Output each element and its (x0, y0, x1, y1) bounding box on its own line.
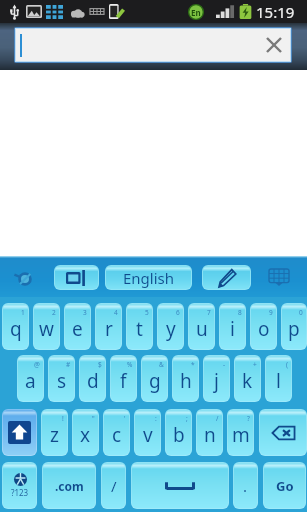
staticText: ? (247, 414, 250, 423)
button[interactable]: Symbols (3, 463, 36, 508)
button[interactable]: & (142, 356, 167, 401)
staticText: . (243, 476, 248, 496)
staticText: o (258, 316, 270, 342)
button[interactable]: 1 (3, 304, 28, 349)
button[interactable]: ' (104, 410, 129, 455)
button[interactable]: % (111, 356, 136, 401)
button[interactable]: Shift (3, 410, 36, 455)
staticText: : (155, 414, 157, 423)
staticText: 5 (145, 308, 149, 317)
staticText: $ (98, 360, 102, 369)
staticText: / (216, 414, 219, 423)
staticText: 9 (269, 308, 273, 317)
staticText: n (204, 422, 216, 448)
button[interactable]: ; (166, 410, 191, 455)
button[interactable]: .com (43, 463, 95, 508)
button[interactable]: @ (18, 356, 43, 401)
staticText: i (230, 316, 235, 342)
button[interactable]: $ (80, 356, 105, 401)
button[interactable]: Go (264, 463, 305, 508)
staticText: ( (286, 360, 288, 369)
staticText: 8 (238, 308, 242, 317)
staticText: s (57, 368, 67, 394)
button[interactable]: 8 (220, 304, 245, 349)
button[interactable]: Handwriting (203, 266, 250, 289)
staticText: 4 (114, 308, 118, 317)
staticText: u (196, 316, 208, 342)
staticText: d (87, 368, 99, 394)
staticText: q (10, 316, 22, 342)
staticText: ! (62, 414, 64, 423)
staticText: / (111, 476, 117, 496)
button[interactable]: ? (228, 410, 253, 455)
staticText: a (25, 368, 36, 394)
staticText: ' (124, 414, 126, 423)
staticText: - (223, 360, 226, 369)
staticText: + (253, 360, 257, 369)
button[interactable]: . (234, 463, 257, 508)
staticText: h (180, 368, 192, 394)
button[interactable]: " (73, 410, 98, 455)
staticText: 7 (207, 308, 211, 317)
staticText: b (173, 422, 185, 448)
button[interactable]: - (204, 356, 229, 401)
staticText: p (288, 316, 300, 342)
staticText: & (159, 360, 164, 369)
button[interactable]: 2 (34, 304, 59, 349)
staticText: ?123 (11, 487, 29, 498)
staticText: 6 (176, 308, 180, 317)
staticText: v (143, 422, 153, 448)
button[interactable]: / (102, 463, 125, 508)
staticText: .com (55, 478, 84, 494)
button[interactable]: English (106, 266, 191, 289)
button[interactable]: 9 (251, 304, 276, 349)
button[interactable]: 4 (96, 304, 121, 349)
staticText: * (191, 360, 195, 369)
staticText: ; (186, 414, 188, 423)
button[interactable]: ! (42, 410, 67, 455)
staticText: English (123, 268, 175, 288)
staticText: f (120, 368, 127, 394)
button[interactable]: 3 (65, 304, 90, 349)
button[interactable]: Voice input off (14, 268, 34, 288)
button[interactable]: / (197, 410, 222, 455)
staticText: k (242, 368, 253, 394)
staticText: 0 (299, 308, 303, 317)
button[interactable]: + (235, 356, 260, 401)
staticText: " (92, 414, 95, 423)
staticText: z (50, 422, 59, 448)
staticText: w (39, 316, 54, 342)
button[interactable]: Backspace (260, 410, 306, 455)
staticText: c (112, 422, 122, 448)
staticText: Go (276, 477, 294, 495)
button[interactable]: 0 (282, 304, 306, 349)
staticText: % (127, 360, 133, 369)
staticText: e (72, 316, 83, 342)
button[interactable]: # (49, 356, 74, 401)
button[interactable]: 5 (127, 304, 152, 349)
button[interactable]: Space (132, 463, 228, 508)
button[interactable]: Hide keyboard (269, 269, 289, 286)
staticText: 15:19 (256, 2, 295, 22)
button[interactable]: : (135, 410, 160, 455)
button[interactable]: ( (266, 356, 291, 401)
staticText: En (191, 7, 201, 18)
staticText: x (80, 422, 91, 448)
staticText: l (276, 368, 281, 394)
staticText: @ (34, 360, 40, 369)
staticText: y (166, 316, 176, 342)
button[interactable]: * (173, 356, 198, 401)
staticText: t (136, 316, 143, 342)
staticText: r (105, 316, 113, 342)
staticText: 2 (52, 308, 56, 317)
staticText: m (232, 422, 250, 448)
button[interactable]: 6 (158, 304, 183, 349)
button[interactable]: Input method (55, 266, 98, 289)
button[interactable]: Clear text (266, 37, 282, 53)
staticText: # (66, 360, 71, 369)
staticText: 1 (21, 308, 25, 317)
staticText: j (214, 368, 219, 394)
button[interactable]: 7 (189, 304, 214, 349)
staticText: 3 (83, 308, 87, 317)
button[interactable]: Clear text (16, 29, 290, 61)
